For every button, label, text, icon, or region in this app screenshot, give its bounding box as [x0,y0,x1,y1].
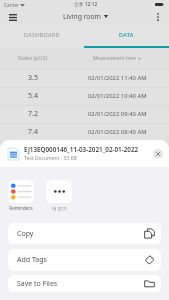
staticText: 02/01/2022 09:40 AM [88,110,147,118]
staticText: 7.4 [28,127,38,137]
staticText: 02/01/2022 10:40 AM [88,92,147,100]
button[interactable]: Save to Files [8,275,161,292]
button[interactable]: Measurement time [65,55,169,62]
button[interactable]: 7.2 [0,106,169,123]
button[interactable]: 7.4 [0,124,169,141]
staticText: Measurement time [93,55,136,62]
button[interactable]: Menu [7,11,19,23]
staticText: 오후 12:12 [74,1,98,8]
staticText: 02/01/2022 11:40 AM [88,74,147,82]
staticText: Living room [63,12,101,21]
staticText: 02/01/2022 08:40 AM [88,128,147,136]
button[interactable]: 3.5 [0,70,169,87]
staticText: 7.2 [28,109,38,119]
staticText: Reminders [9,205,33,211]
staticText: 5.4 [28,91,38,101]
button[interactable]: Living room [63,12,108,21]
button[interactable]: Add Tags [8,249,161,271]
staticText: 3.5 [28,73,38,83]
button[interactable]: Reminders [8,180,34,211]
button[interactable]: DATA [84,24,169,48]
staticText: EJ13EQ000146_11-03-2021_02-01-2022 [24,145,139,154]
staticText: Carrier [4,2,19,8]
staticText: DATA [119,31,134,38]
button[interactable]: More options [152,11,164,23]
button[interactable]: DASHBOARD [0,24,84,48]
button[interactable]: 5.4 [0,88,169,105]
staticText: Add Tags [17,255,47,265]
staticText: Text Document · 53 KB [24,155,77,162]
button[interactable]: 더 보기 [46,180,72,211]
staticText: DASHBOARD [24,31,60,38]
staticText: Save to Files [17,279,58,289]
staticText: Radon (pCi/l) [18,55,47,62]
button[interactable]: Close [153,149,163,159]
staticText: 더 보기 [52,205,67,211]
button[interactable]: Copy [8,223,161,244]
staticText: Copy [17,229,34,239]
